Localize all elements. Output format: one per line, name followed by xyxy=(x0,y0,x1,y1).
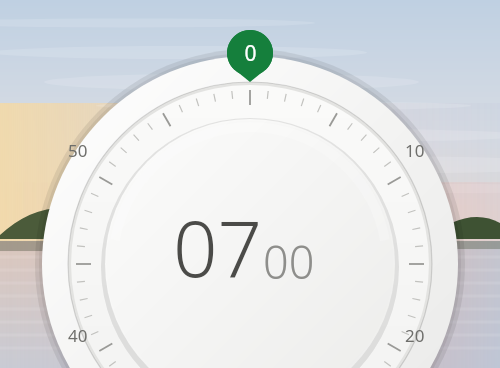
button[interactable]: 20 xyxy=(405,324,425,347)
button[interactable]: Selected value 0 xyxy=(227,30,273,82)
staticText: 0 xyxy=(244,39,257,68)
button[interactable]: 50 xyxy=(68,139,88,162)
staticText: 07 xyxy=(173,194,263,300)
staticText: 00 xyxy=(263,231,315,292)
button[interactable]: 40 xyxy=(68,324,88,347)
button[interactable]: 10 xyxy=(405,139,425,162)
